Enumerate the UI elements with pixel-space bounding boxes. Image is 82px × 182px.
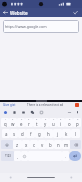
button[interactable]: Stickers bbox=[29, 109, 35, 115]
staticText: t bbox=[36, 121, 38, 127]
button[interactable]: 7 bbox=[49, 118, 57, 127]
staticText: . bbox=[65, 154, 67, 159]
button[interactable]: Emoji bbox=[21, 151, 28, 161]
button[interactable]: m bbox=[62, 140, 70, 149]
button[interactable]: a bbox=[2, 129, 10, 138]
button[interactable]: https://www.google.com bbox=[3, 20, 79, 33]
button[interactable]: 8 bbox=[57, 118, 65, 127]
button[interactable]: Save bbox=[72, 9, 79, 16]
button[interactable]: There is a relevant text ad bbox=[16, 103, 75, 107]
staticText: 0 bbox=[77, 118, 79, 121]
button[interactable]: Translate bbox=[38, 109, 44, 115]
staticText: f bbox=[30, 131, 32, 137]
staticText: u bbox=[52, 121, 55, 127]
button[interactable]: d bbox=[18, 129, 26, 138]
button[interactable]: l bbox=[71, 129, 80, 138]
button[interactable]: GIF bbox=[20, 109, 26, 115]
staticText: Give gist bbox=[3, 103, 16, 107]
button[interactable]: 9 bbox=[65, 118, 73, 127]
staticText: e bbox=[20, 121, 23, 127]
button[interactable]: Back bbox=[2, 9, 9, 16]
staticText: b bbox=[49, 142, 52, 148]
button[interactable]: z bbox=[13, 140, 22, 149]
staticText: s bbox=[13, 131, 16, 137]
button[interactable]: b bbox=[46, 140, 54, 149]
staticText: l bbox=[75, 131, 77, 137]
button[interactable]: . bbox=[62, 151, 69, 161]
staticText: 5 bbox=[36, 118, 38, 121]
button[interactable]: 5 bbox=[33, 118, 41, 127]
staticText: 2 bbox=[12, 118, 14, 121]
button[interactable]: Assistant bbox=[2, 109, 8, 115]
staticText: ?123 bbox=[5, 154, 11, 158]
button[interactable]: n bbox=[54, 140, 62, 149]
staticText: 3 bbox=[21, 118, 23, 121]
button[interactable]: Give gist bbox=[3, 103, 16, 107]
button[interactable]: k bbox=[62, 129, 71, 138]
staticText: a bbox=[5, 131, 8, 137]
button[interactable]: h bbox=[44, 129, 53, 138]
staticText: 1 bbox=[5, 118, 7, 121]
staticText: 4 bbox=[28, 118, 30, 121]
button[interactable]: s bbox=[10, 129, 18, 138]
button[interactable]: Backspace bbox=[70, 140, 81, 149]
staticText: w bbox=[11, 121, 15, 127]
staticText: d bbox=[21, 131, 24, 137]
staticText: There is a relevant text ad bbox=[27, 103, 64, 107]
button[interactable]: 2 bbox=[9, 118, 17, 127]
staticText: c bbox=[33, 142, 36, 148]
staticText: p bbox=[76, 121, 79, 127]
button[interactable]: 6 bbox=[41, 118, 49, 127]
button[interactable]: g bbox=[35, 129, 44, 138]
staticText: x bbox=[25, 142, 28, 148]
staticText: 6 bbox=[45, 118, 47, 121]
button[interactable]: f bbox=[26, 129, 35, 138]
staticText: m bbox=[64, 142, 69, 148]
staticText: y bbox=[44, 121, 47, 127]
button[interactable]: Themes bbox=[11, 109, 17, 115]
button[interactable]: , bbox=[14, 151, 21, 161]
button[interactable]: v bbox=[38, 140, 46, 149]
staticText: 9 bbox=[69, 118, 71, 121]
staticText: z bbox=[16, 142, 19, 148]
button[interactable]: j bbox=[53, 129, 62, 138]
button[interactable]: 3 bbox=[17, 118, 25, 127]
button[interactable]: 4 bbox=[25, 118, 33, 127]
staticText: 8 bbox=[60, 118, 62, 121]
staticText: , bbox=[17, 154, 19, 159]
staticText: n bbox=[57, 142, 60, 148]
staticText: 7 bbox=[53, 118, 55, 121]
button[interactable]: Shift bbox=[1, 140, 13, 149]
staticText: r bbox=[28, 121, 30, 127]
button[interactable]: Enter bbox=[69, 151, 81, 161]
staticText: i bbox=[60, 121, 62, 127]
staticText: o bbox=[68, 121, 71, 127]
button[interactable]: 0 bbox=[73, 118, 81, 127]
staticText: j bbox=[57, 131, 59, 137]
staticText: h bbox=[47, 131, 50, 137]
staticText: Website bbox=[10, 10, 72, 16]
staticText: q bbox=[4, 121, 7, 127]
staticText: g bbox=[38, 131, 41, 137]
button[interactable]: x bbox=[22, 140, 30, 149]
button[interactable]: Ad bbox=[75, 103, 79, 107]
staticText: k bbox=[65, 131, 68, 137]
button[interactable]: c bbox=[30, 140, 38, 149]
staticText: https://www.google.com bbox=[5, 24, 47, 29]
button[interactable]: 1 bbox=[1, 118, 9, 127]
button[interactable]: Voice input bbox=[74, 109, 80, 115]
staticText: v bbox=[41, 142, 44, 148]
button[interactable]: ?123 bbox=[1, 151, 14, 161]
button[interactable]: More bbox=[66, 109, 72, 115]
